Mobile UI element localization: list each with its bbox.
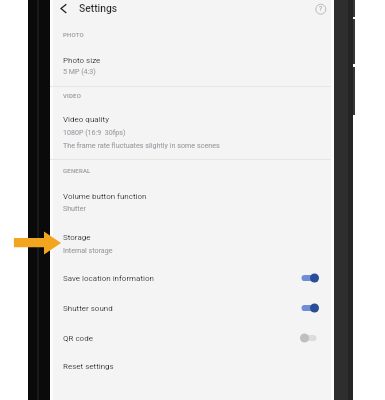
button[interactable]: Volume button function xyxy=(50,182,331,212)
button[interactable]: Video quality xyxy=(50,108,331,158)
staticText: 1080P (16:9 30fps) xyxy=(63,128,126,136)
staticText: Shutter sound xyxy=(63,304,113,313)
staticText: Settings xyxy=(79,2,118,14)
staticText: QR code xyxy=(63,334,93,343)
button[interactable]: QR code xyxy=(50,323,331,353)
staticText: 5 MP (4:3) xyxy=(63,67,96,75)
button[interactable]: Photo size xyxy=(50,46,331,82)
staticText: ? xyxy=(319,5,323,13)
button[interactable]: Save location information xyxy=(50,263,331,293)
staticText: Video quality xyxy=(63,115,109,124)
staticText: Shutter xyxy=(63,204,86,212)
staticText: Volume button function xyxy=(63,192,147,201)
button[interactable]: Reset settings xyxy=(50,352,331,382)
staticText: Internal storage xyxy=(63,246,113,254)
staticText: Storage xyxy=(63,233,91,242)
button[interactable]: Settings xyxy=(74,0,124,20)
staticText: PHOTO xyxy=(63,31,84,38)
staticText: GENERAL xyxy=(63,167,91,174)
button[interactable]: Back xyxy=(54,0,73,19)
staticText: Reset settings xyxy=(63,362,114,371)
staticText: VIDEO xyxy=(63,92,82,99)
button[interactable]: Shutter sound xyxy=(50,293,331,323)
button[interactable]: Help xyxy=(311,0,330,19)
staticText: The frame rate fluctuates slightly in so… xyxy=(63,141,220,149)
staticText: Save location information xyxy=(63,274,154,283)
button[interactable]: Storage xyxy=(50,224,331,256)
staticText: Photo size xyxy=(63,56,101,65)
